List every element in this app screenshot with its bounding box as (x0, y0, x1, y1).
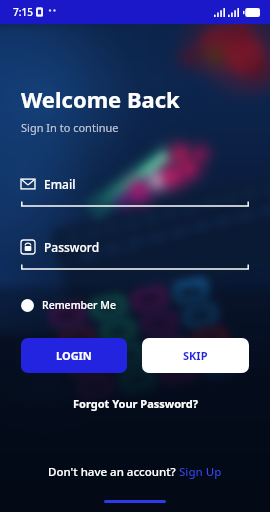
button[interactable]: Remember Me (21, 295, 116, 315)
button[interactable]: Email (21, 176, 249, 207)
staticText: Welcome Back (21, 84, 180, 114)
staticText: Remember Me (42, 298, 116, 312)
staticText: Sign In to continue (21, 120, 119, 135)
staticText: Email (44, 176, 76, 192)
button[interactable]: LOGIN (21, 338, 127, 373)
button[interactable]: Sign Up (179, 464, 222, 480)
button[interactable]: Forgot Your Password? (69, 392, 202, 415)
staticText: SKIP (183, 348, 208, 363)
staticText: 7:15 (13, 5, 33, 19)
staticText: LOGIN (56, 348, 92, 363)
staticText: Don't have an account? (48, 464, 179, 480)
other: Password (21, 240, 35, 254)
staticText: Sign Up (179, 464, 222, 480)
staticText: Password (44, 239, 100, 255)
other: Email (21, 177, 35, 191)
button[interactable]: SKIP (142, 338, 249, 373)
staticText: Forgot Your Password? (73, 396, 198, 411)
button[interactable]: Password (21, 239, 249, 270)
